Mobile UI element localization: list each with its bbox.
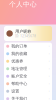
staticText: 我的订单: [11, 44, 27, 49]
staticText: ›: [49, 52, 50, 55]
staticText: 帮助中心: [11, 81, 27, 86]
staticText: 优惠券: [11, 59, 23, 64]
button[interactable]: 帮助中心: [4, 80, 52, 87]
staticText: ›: [49, 82, 50, 85]
button[interactable]: 关于我们: [4, 95, 52, 100]
staticText: ›: [49, 89, 50, 93]
staticText: 账户安全: [11, 74, 27, 79]
button[interactable]: 我的收藏: [4, 50, 52, 57]
staticText: 地址管理: [11, 66, 27, 71]
button[interactable]: 我的订单: [4, 42, 52, 50]
staticText: ›: [49, 97, 50, 100]
button[interactable]: 地址管理: [4, 65, 52, 72]
staticText: ›: [49, 59, 50, 63]
staticText: ›: [49, 74, 50, 78]
staticText: 个人中心: [9, 0, 37, 8]
button[interactable]: 账户安全: [4, 72, 52, 80]
button[interactable]: 设置: [4, 87, 52, 95]
staticText: ›: [49, 67, 50, 70]
button[interactable]: 优惠券: [4, 57, 52, 65]
staticText: 设置: [11, 89, 19, 94]
staticText: 我的收藏: [11, 51, 27, 56]
staticText: ID: 12345678: [15, 34, 36, 38]
staticText: 用户昵称: [15, 29, 31, 34]
staticText: 关于我们: [11, 96, 27, 100]
staticText: ›: [49, 44, 50, 48]
